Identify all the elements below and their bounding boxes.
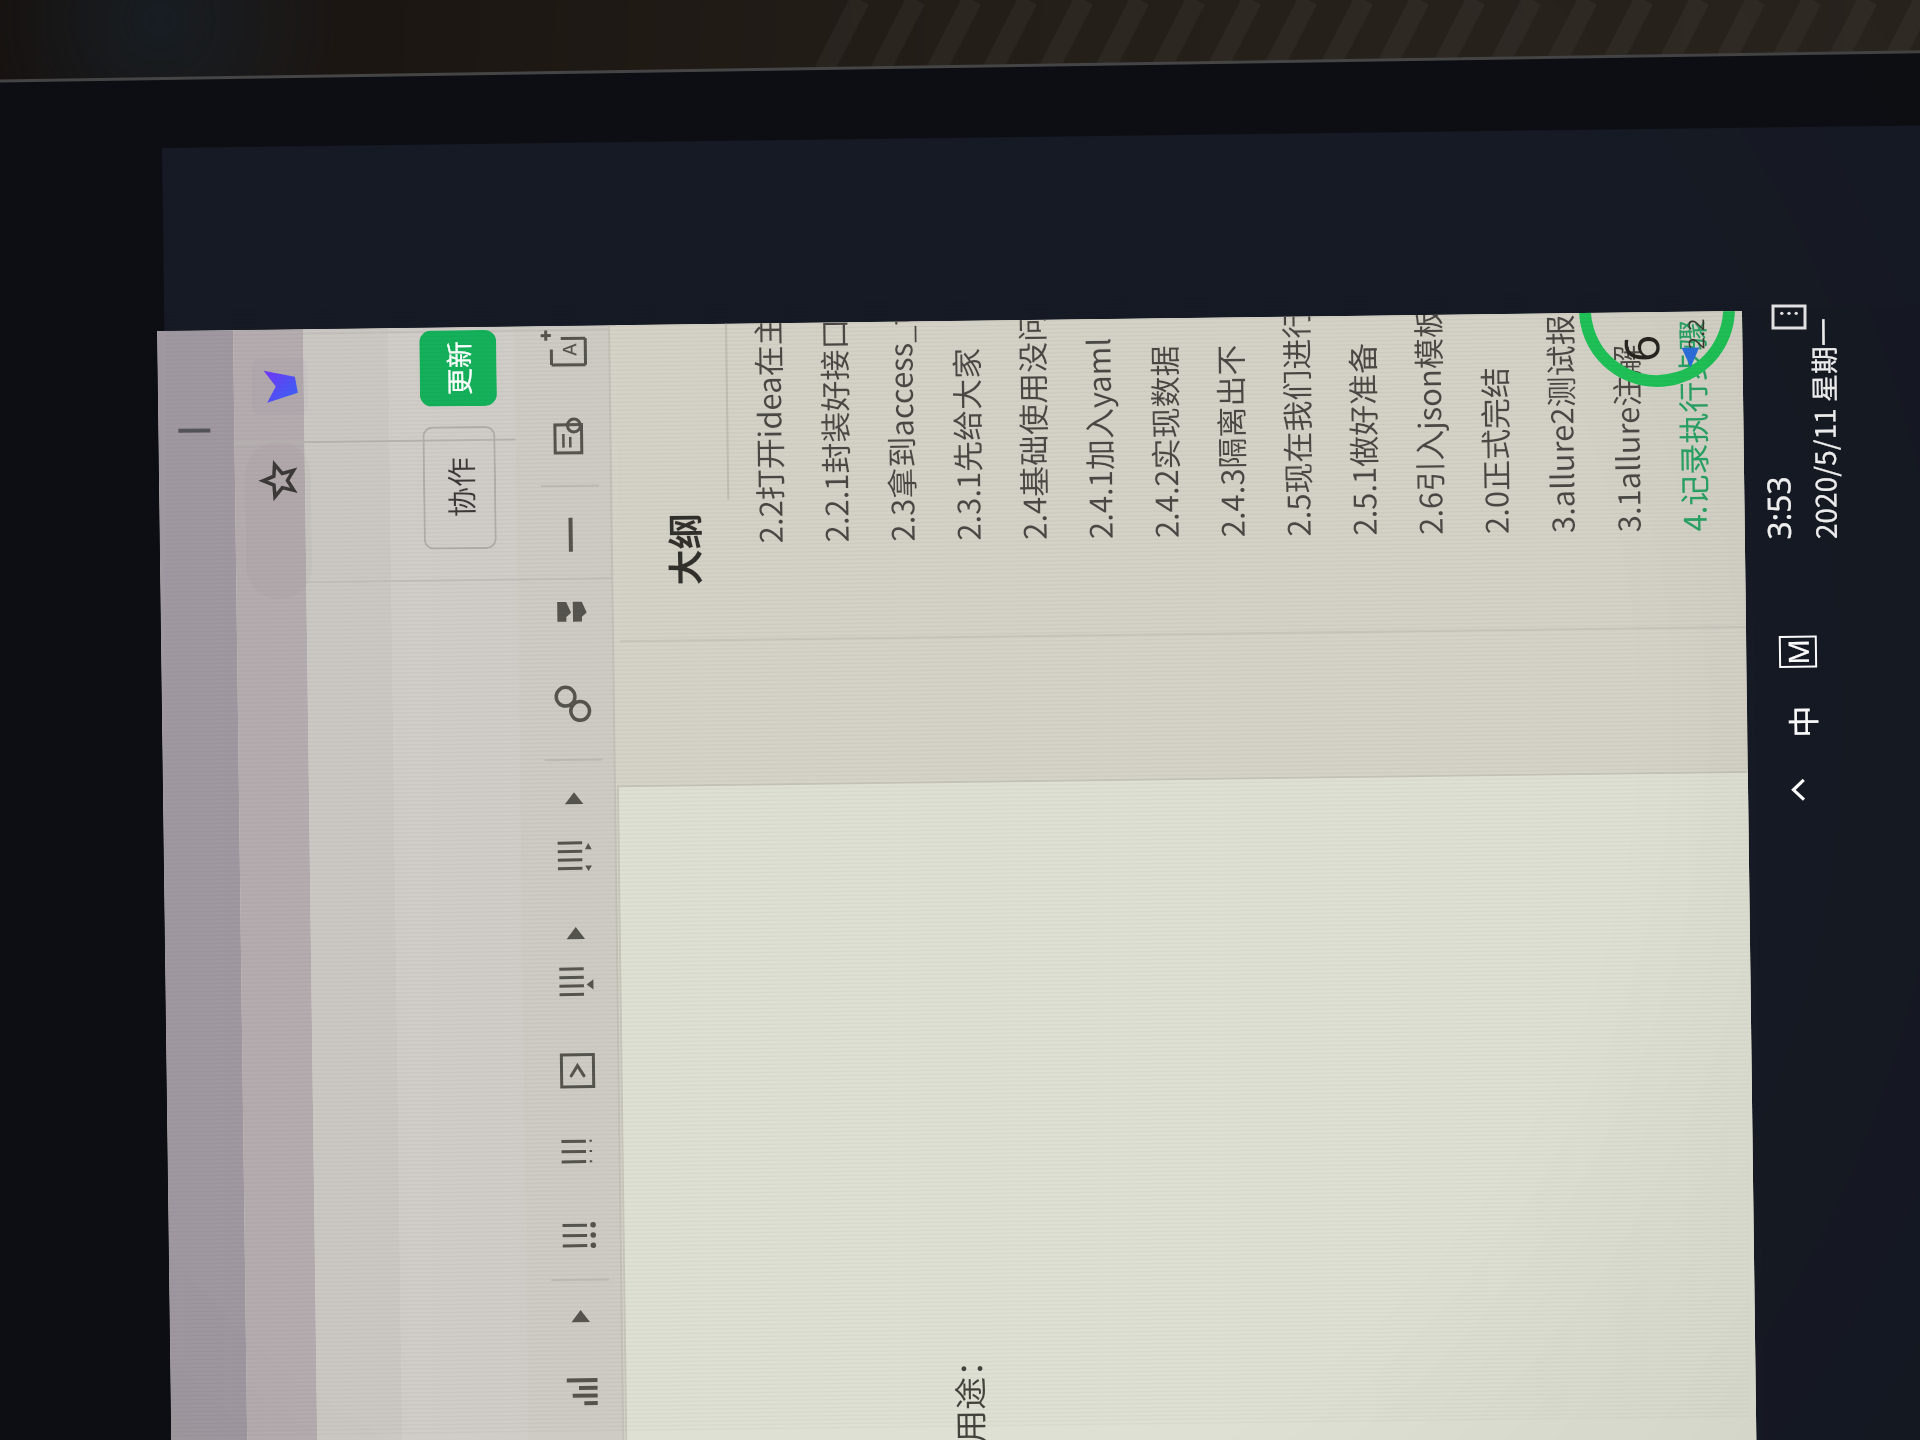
staticText: 6 [1608,334,1674,363]
button[interactable]: Bullet list [537,1198,622,1267]
staticText: 大纲 [656,512,709,586]
staticText: 2.4.1加入yaml [1074,337,1122,539]
button[interactable]: Numbered list [536,1114,621,1183]
button[interactable]: 3.1allure注解 [1591,312,1661,632]
button[interactable]: Link [530,669,615,738]
staticText: 更新 [438,341,478,395]
button[interactable]: 协作 [422,426,497,550]
staticText: 2.2.1封装好接口 [810,322,858,543]
button[interactable]: More list options [533,900,618,969]
button[interactable]: More align options [532,765,617,834]
staticText: 2.3拿到access_t [876,321,924,542]
button[interactable]: 2.2打开idea在主 [733,323,803,643]
button[interactable]: 2.5.1做好准备 [1327,315,1397,635]
button[interactable]: 2.3.1先给大家 [931,320,1001,640]
button[interactable]: Notifications [1767,299,1811,335]
button[interactable]: Code block [535,1036,620,1105]
staticText: 2.4.2实现数据 [1140,345,1188,539]
button[interactable]: 2.0正式完结 [1459,314,1529,633]
button[interactable]: 2.6引入json模板 [1393,314,1463,634]
button[interactable]: Find and replace [527,399,612,468]
staticText: A [556,343,582,356]
button[interactable]: Chinese input mode [1779,699,1819,744]
button[interactable]: Show hidden icons [1779,767,1820,812]
button[interactable]: 3:53 [1754,279,1849,540]
staticText: 2.6引入json模板 [1404,315,1452,535]
staticText: 3.1allure注解 [1602,344,1650,533]
staticText: 2.5.1做好准备 [1338,342,1386,536]
button[interactable]: 2.5现在我们进行 [1261,316,1331,636]
staticText: 3:53 [1756,475,1801,540]
staticText: 2.0正式完结 [1471,366,1518,534]
button[interactable]: 2.4基础使用没问 [997,320,1067,639]
button[interactable]: More [538,1283,623,1352]
button[interactable]: Align [534,946,619,1015]
button[interactable]: Favourite [252,452,308,509]
button[interactable]: Chart [539,1357,624,1426]
button[interactable]: 3.allure2测试报告 [1525,313,1595,633]
button[interactable]: Quote [529,582,614,651]
staticText: M [1779,638,1817,665]
button[interactable]: Indent [532,820,617,889]
staticText: 中 [1779,704,1819,738]
button[interactable]: 更新 [419,330,497,407]
staticText: 2.5现在我们进行 [1272,316,1320,537]
button[interactable]: Input method [1778,629,1818,674]
button[interactable]: 2.4.2实现数据 [1129,318,1199,638]
staticText: 2.4.3隔离出不 [1206,344,1254,538]
staticText: 用途： [944,1343,993,1440]
button[interactable]: Divider [528,500,613,569]
button[interactable]: 2.4.1加入yaml [1063,319,1133,638]
staticText: 协作 [438,457,481,517]
button[interactable]: 2.2.1封装好接口 [799,322,869,642]
button[interactable]: 2.4.3隔离出不 [1195,317,1265,637]
button[interactable]: 4.记录执行步骤 [1657,311,1727,631]
button[interactable]: App logo [251,358,308,415]
staticText: 2.2打开idea在主 [744,323,792,544]
staticText: 2020/5/11 星期一 [1802,317,1846,539]
staticText: 3.allure2测试报告 [1536,313,1584,534]
staticText: 2.3.1先给大家 [942,347,990,541]
staticText: 2.4基础使用没问 [1008,320,1056,540]
button[interactable]: Text style [526,325,611,382]
staticText: 4.记录执行步骤 [1668,319,1716,532]
staticText: 2.2 [1680,317,1710,350]
button[interactable]: 2.3拿到access_t [865,321,935,641]
